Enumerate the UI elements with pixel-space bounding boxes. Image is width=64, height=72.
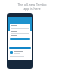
button[interactable]	[9, 47, 31, 49]
staticText: The all-new Tembo	[17, 2, 47, 6]
button[interactable]	[10, 38, 30, 40]
staticText: app is here	[23, 6, 41, 10]
